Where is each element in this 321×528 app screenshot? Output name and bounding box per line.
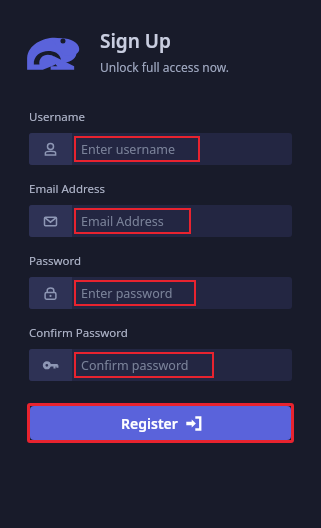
other: Email: [29, 205, 72, 237]
button[interactable]: Register: [30, 406, 291, 440]
staticText: Confirm Password: [29, 325, 128, 341]
staticText: Email Address: [81, 213, 164, 230]
staticText: Email Address: [29, 181, 106, 197]
button[interactable]: Confirm password: [29, 349, 292, 381]
staticText: Password: [29, 253, 82, 269]
other: Password: [29, 277, 72, 309]
staticText: Register: [121, 414, 178, 433]
other: Username: [29, 133, 72, 165]
staticText: Sign Up: [100, 28, 171, 54]
button[interactable]: Email: [29, 205, 292, 237]
button[interactable]: Password: [29, 277, 292, 309]
staticText: Confirm password: [81, 357, 189, 374]
staticText: Username: [29, 109, 85, 125]
button[interactable]: Username: [29, 133, 292, 165]
staticText: Enter password: [81, 285, 173, 302]
other: Confirm password: [29, 349, 72, 381]
staticText: Unlock full access now.: [100, 59, 229, 75]
staticText: Enter username: [81, 141, 176, 158]
